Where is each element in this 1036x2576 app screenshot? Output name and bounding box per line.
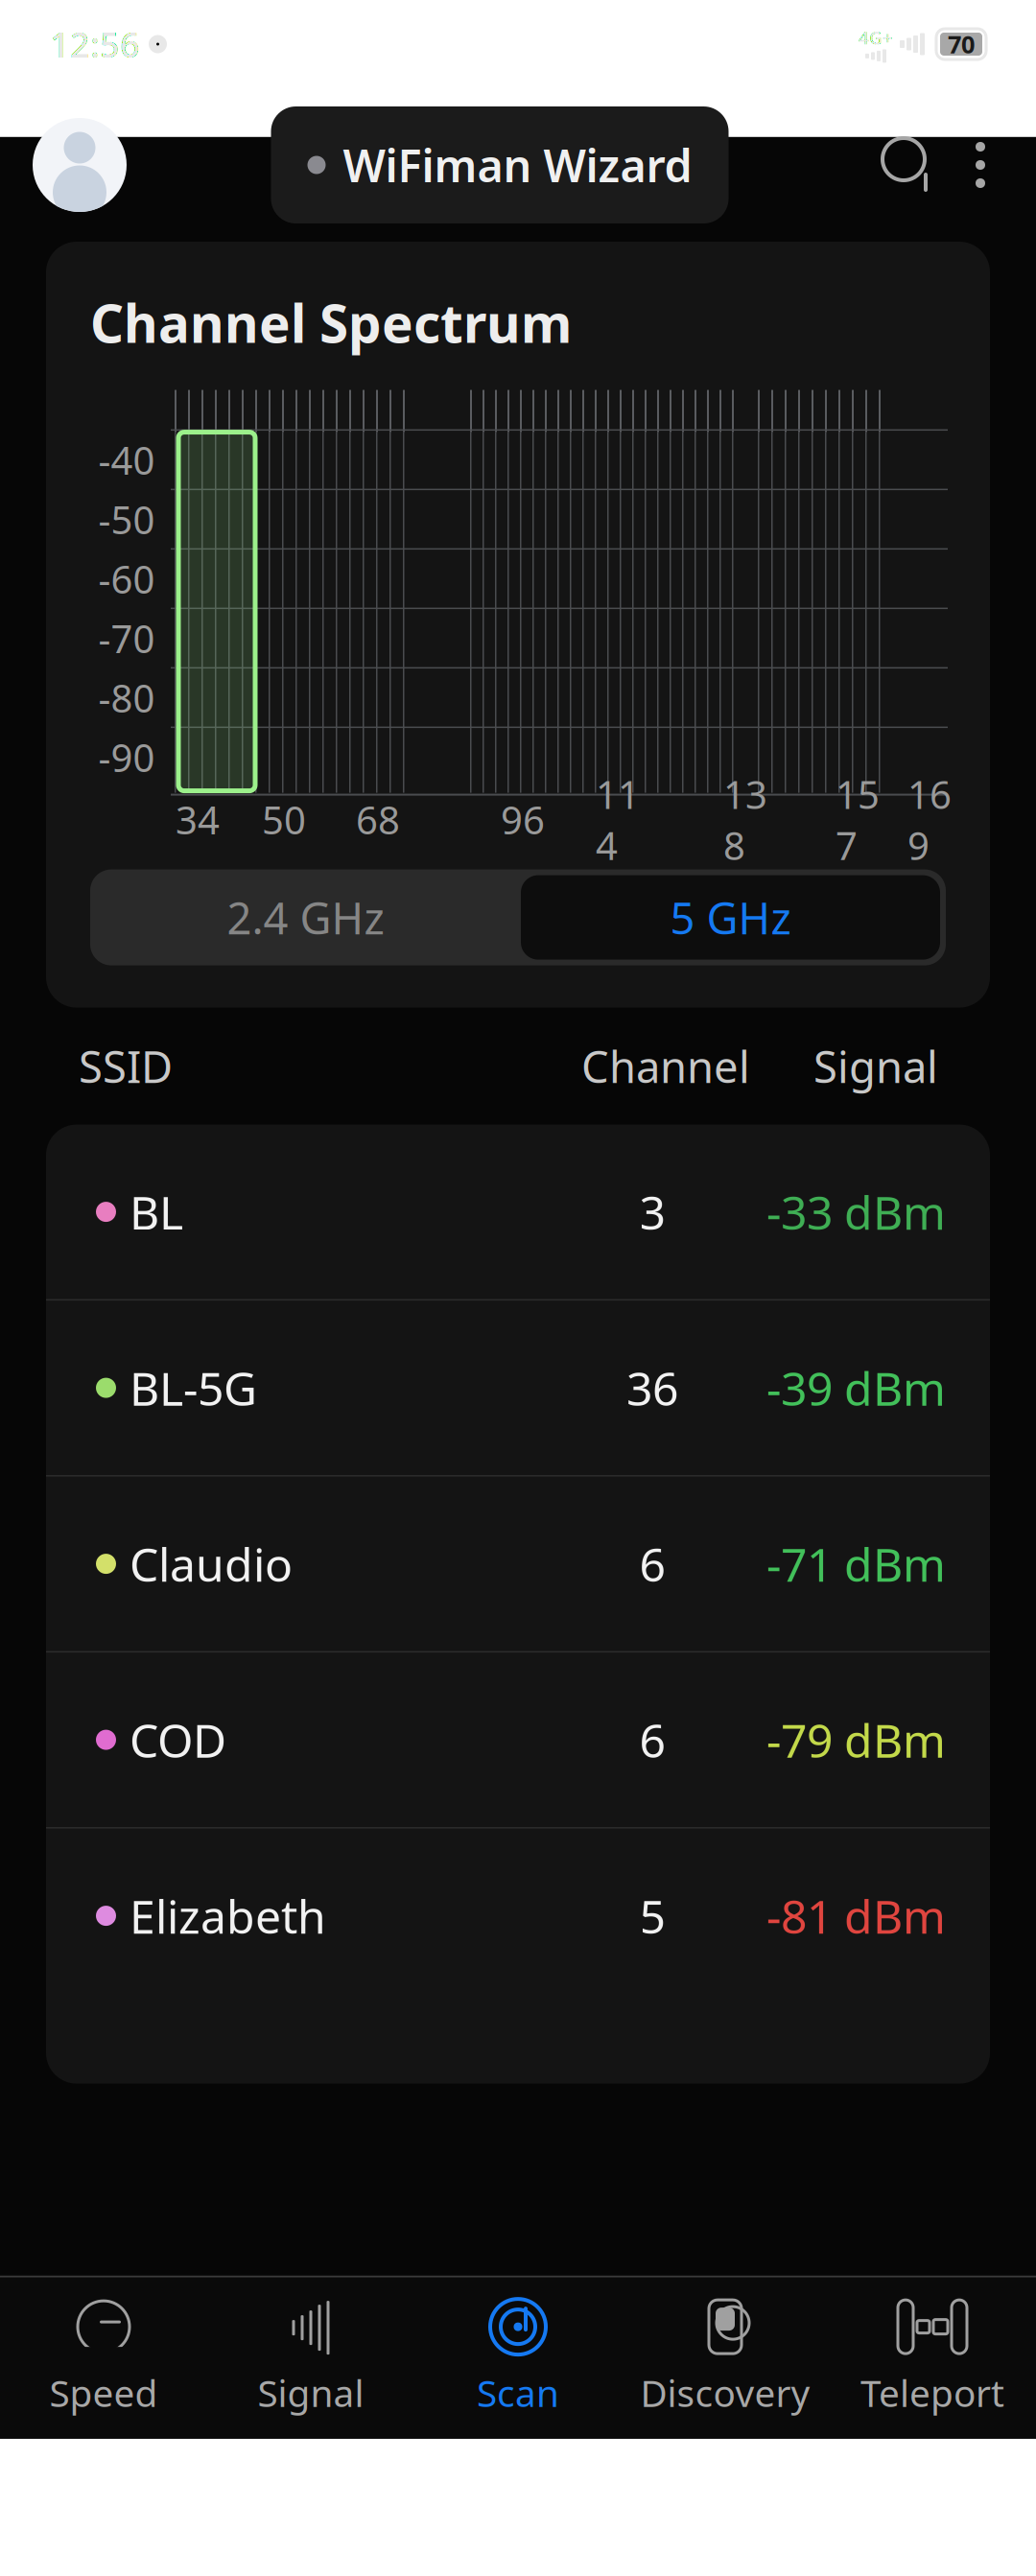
staticText: Elizabeth: [129, 1885, 326, 1946]
staticText: Speed: [49, 2368, 158, 2417]
staticText: -39 dBm: [766, 1357, 946, 1418]
staticText: COD: [129, 1709, 226, 1770]
button[interactable]: WiFiman Wizard: [271, 106, 729, 223]
staticText: 3: [639, 1181, 665, 1242]
staticText: Discovery: [640, 2368, 810, 2417]
staticText: Signal: [258, 2368, 364, 2417]
button[interactable]: 5 GHz: [521, 875, 940, 960]
staticText: -81 dBm: [766, 1885, 946, 1946]
staticText: Channel: [581, 1037, 750, 1095]
staticText: -60: [98, 553, 155, 604]
staticText: 5: [639, 1885, 665, 1946]
button[interactable]: BL: [46, 1125, 990, 1299]
button[interactable]: Search: [873, 129, 946, 201]
button[interactable]: Speed: [0, 2281, 207, 2435]
staticText: Signal: [813, 1037, 938, 1095]
staticText: 6: [639, 1533, 665, 1594]
button[interactable]: Profile: [33, 118, 127, 212]
staticText: 5 GHz: [670, 889, 791, 946]
staticText: 6: [639, 1709, 665, 1770]
button[interactable]: Claudio: [46, 1477, 990, 1651]
staticText: -50: [98, 494, 155, 545]
staticText: 36: [626, 1357, 678, 1418]
staticText: Teleport: [860, 2368, 1004, 2417]
staticText: Scan: [477, 2368, 559, 2417]
staticText: 114: [596, 769, 640, 871]
button[interactable]: Signal: [207, 2281, 414, 2435]
button[interactable]: More options: [946, 129, 1015, 201]
staticText: 4G+: [859, 26, 893, 49]
staticText: -70: [98, 613, 155, 664]
staticText: WiFiman Wizard: [343, 135, 692, 195]
staticText: BL: [129, 1181, 183, 1242]
staticText: 138: [723, 769, 767, 871]
button[interactable]: Teleport: [829, 2281, 1036, 2435]
button[interactable]: Scan: [414, 2281, 622, 2435]
staticText: SSID: [79, 1037, 173, 1095]
staticText: 50: [262, 794, 306, 845]
staticText: 157: [836, 769, 880, 871]
staticText: 96: [501, 794, 545, 845]
staticText: -90: [98, 732, 155, 783]
staticText: -40: [98, 434, 155, 485]
staticText: 70: [948, 28, 975, 60]
staticText: -79 dBm: [766, 1709, 946, 1770]
staticText: 2.4 GHz: [227, 889, 384, 946]
staticText: -80: [98, 672, 155, 723]
staticText: 12:56: [50, 21, 140, 67]
staticText: -33 dBm: [766, 1181, 946, 1242]
button[interactable]: COD: [46, 1653, 990, 1827]
staticText: -71 dBm: [766, 1533, 946, 1594]
button[interactable]: Discovery: [622, 2281, 829, 2435]
staticText: BL-5G: [129, 1357, 257, 1418]
staticText: 169: [907, 769, 952, 871]
button[interactable]: 2.4 GHz: [93, 875, 518, 960]
staticText: 68: [356, 794, 400, 845]
staticText: Claudio: [129, 1533, 293, 1594]
button[interactable]: Elizabeth: [46, 1829, 990, 2003]
button[interactable]: BL-5G: [46, 1301, 990, 1475]
staticText: 34: [176, 794, 220, 845]
staticText: Channel Spectrum: [90, 288, 572, 357]
